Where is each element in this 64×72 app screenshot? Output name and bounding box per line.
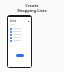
- button[interactable]: [10, 39, 31, 42]
- staticText: Create Shopping Lists: [17, 3, 47, 13]
- button[interactable]: [10, 36, 31, 39]
- button[interactable]: Create new list: [16, 54, 24, 57]
- button[interactable]: [10, 27, 31, 30]
- button[interactable]: [10, 30, 31, 33]
- staticText: Lists: [10, 19, 16, 23]
- button[interactable]: [10, 33, 31, 36]
